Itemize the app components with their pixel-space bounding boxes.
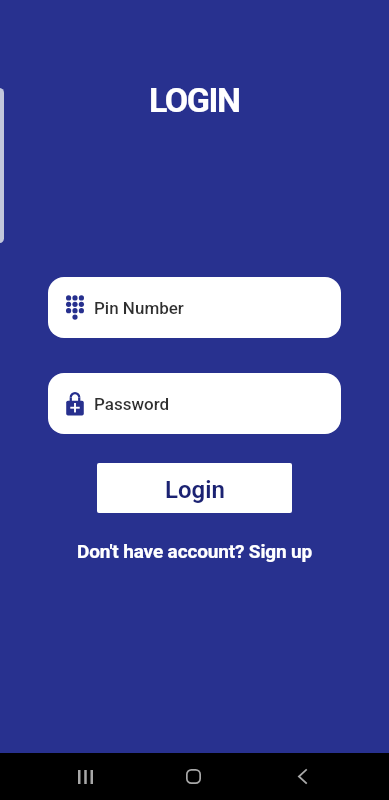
staticText: Don't have account? Sign up [77, 540, 313, 562]
button[interactable]: Recent apps [61, 753, 109, 800]
staticText: Password [94, 394, 170, 414]
staticText: Login [165, 476, 225, 504]
staticText: LOGIN [149, 80, 240, 120]
button[interactable]: Home [169, 753, 217, 800]
button[interactable]: Don't have account? Sign up [75, 540, 315, 562]
button[interactable]: Back [278, 753, 326, 800]
staticText: Pin Number [94, 298, 184, 318]
button[interactable]: Login [97, 463, 292, 513]
button[interactable]: Password [48, 373, 341, 434]
button[interactable]: Pin Number [48, 277, 341, 338]
